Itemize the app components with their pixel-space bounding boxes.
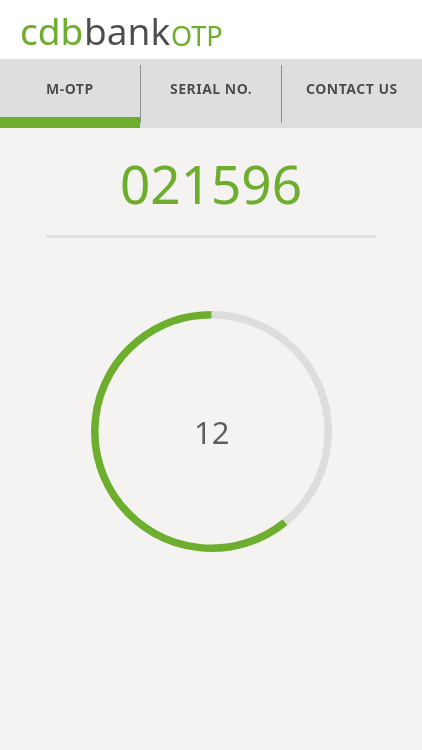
staticText: SERIAL NO. [170, 79, 253, 98]
staticText: OTP [171, 17, 223, 54]
button[interactable]: M-OTP [0, 59, 140, 128]
button[interactable]: SERIAL NO. [141, 59, 281, 128]
staticText: M-OTP [46, 79, 94, 98]
staticText: bank [84, 5, 171, 55]
staticText: CONTACT US [306, 79, 398, 98]
button[interactable]: CONTACT US [282, 59, 422, 128]
staticText: 12 [194, 411, 230, 453]
staticText: cdb [20, 5, 84, 55]
staticText: 021596 [0, 147, 422, 219]
